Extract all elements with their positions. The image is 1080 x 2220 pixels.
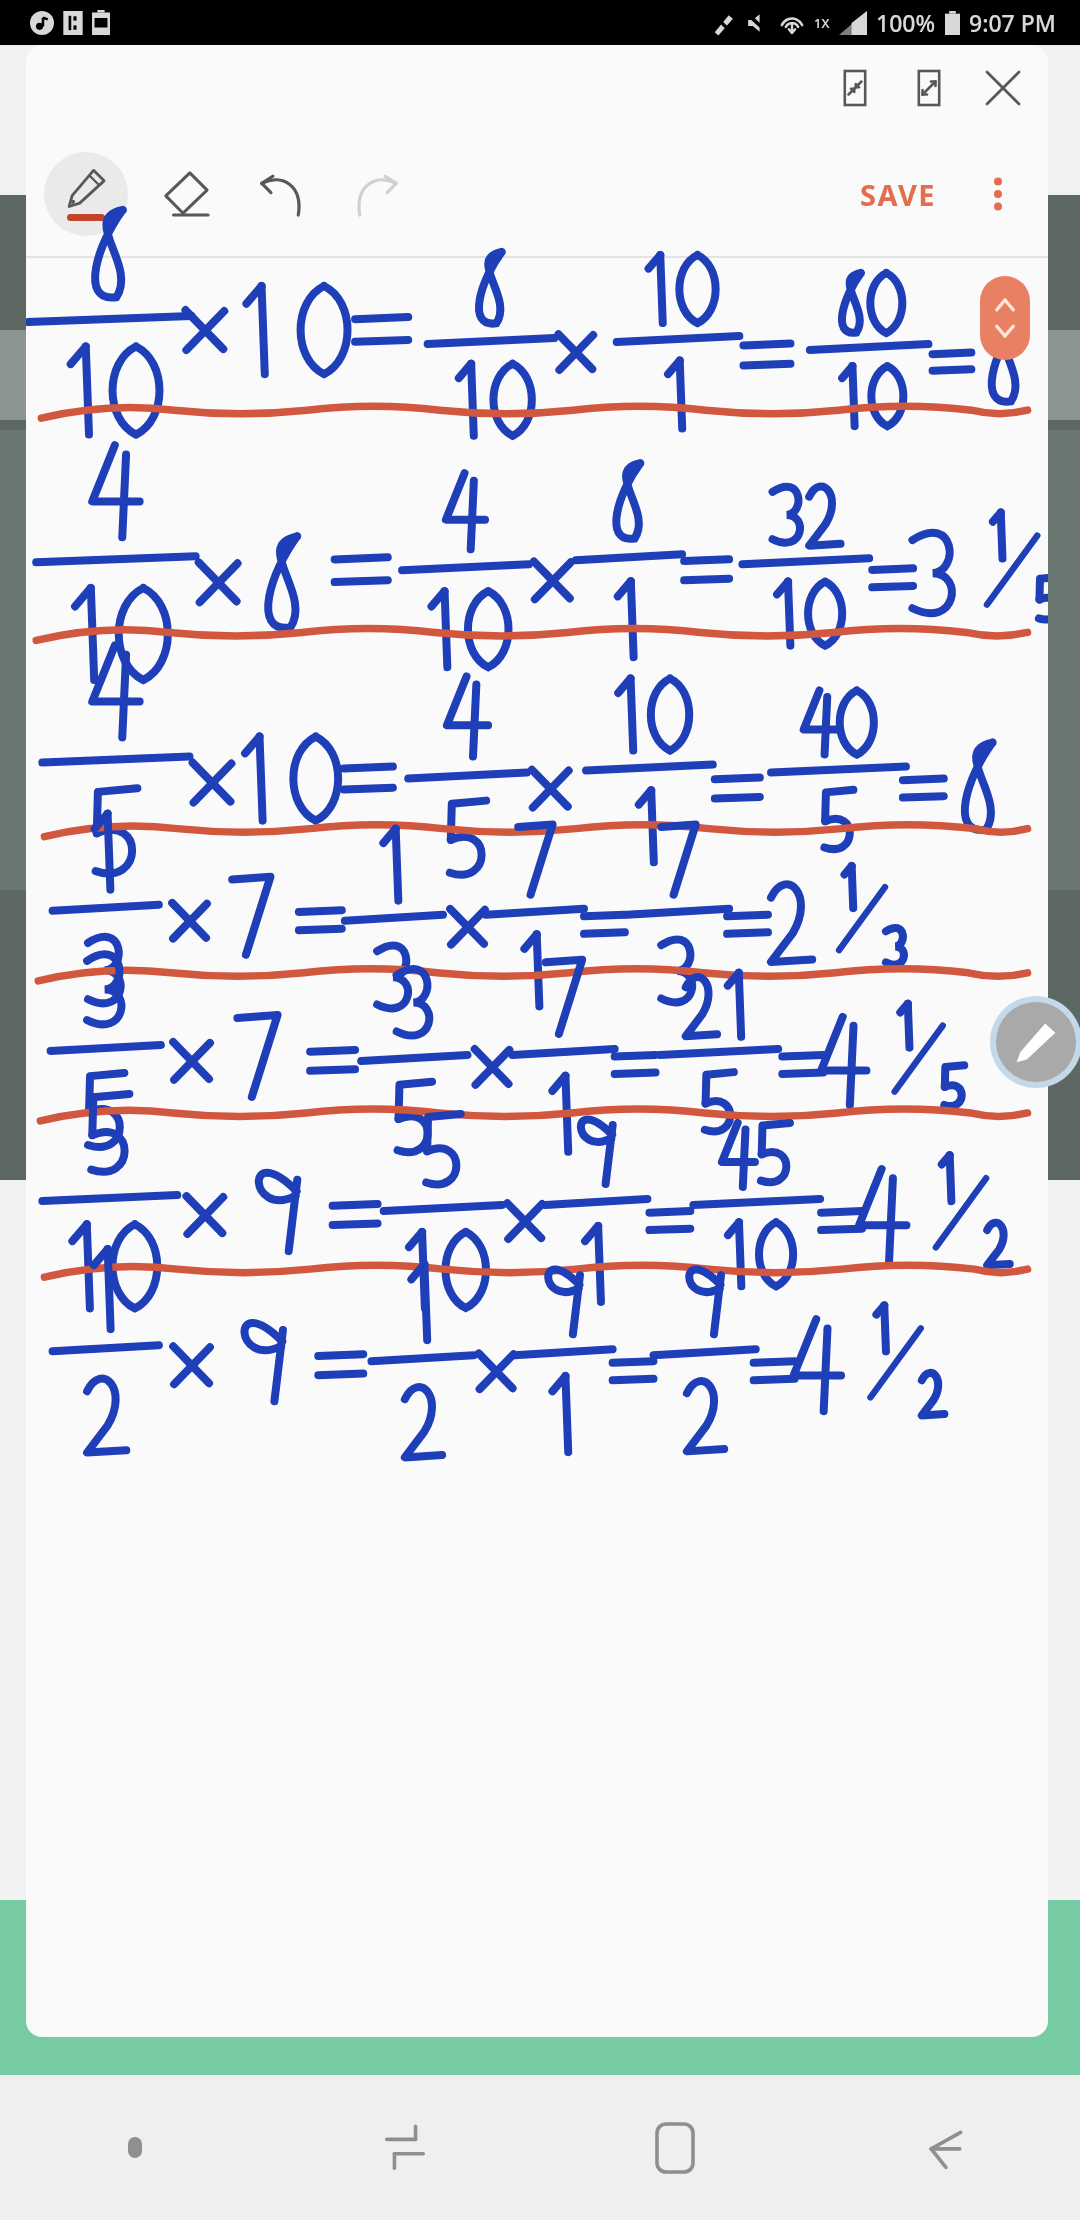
staticText: 1X bbox=[814, 14, 830, 32]
staticText: SAVE bbox=[860, 175, 936, 214]
staticText: 9:07 PM bbox=[969, 7, 1056, 38]
button[interactable]: Back bbox=[810, 2075, 1080, 2220]
button[interactable]: Scroll bbox=[980, 276, 1030, 360]
button[interactable]: Eraser bbox=[146, 155, 224, 233]
button[interactable]: SAVE bbox=[844, 163, 952, 226]
button[interactable]: Draw bbox=[996, 1002, 1076, 1082]
button[interactable]: Home bbox=[540, 2075, 810, 2220]
staticText: 100% bbox=[876, 7, 936, 38]
button[interactable]: Undo bbox=[242, 155, 320, 233]
button[interactable]: Recents bbox=[270, 2075, 540, 2220]
button[interactable]: Pen bbox=[44, 152, 128, 236]
button[interactable]: Expand window bbox=[902, 61, 956, 115]
button[interactable]: Shrink window bbox=[828, 61, 882, 115]
button[interactable]: Redo bbox=[338, 155, 416, 233]
button[interactable]: Menu bbox=[0, 2075, 270, 2220]
button[interactable]: Close bbox=[976, 61, 1030, 115]
button[interactable]: More options bbox=[966, 162, 1030, 226]
